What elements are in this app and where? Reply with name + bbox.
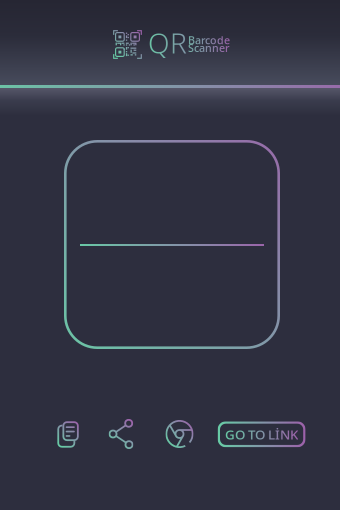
button[interactable]: Open in browser — [157, 412, 201, 456]
staticText: QR — [148, 24, 187, 61]
button[interactable]: Share — [99, 412, 143, 456]
staticText: Scanner — [188, 41, 230, 55]
button[interactable]: Copy — [46, 412, 90, 456]
button[interactable]: GO TO LİNK — [218, 421, 306, 447]
staticText: GO TO LİNK — [225, 425, 298, 443]
staticText: Barcode — [188, 33, 230, 47]
